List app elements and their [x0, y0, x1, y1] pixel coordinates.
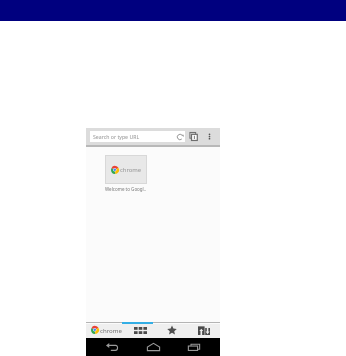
button[interactable]: Search or type URL [90, 131, 185, 142]
button[interactable]: Bookmarks [153, 323, 187, 337]
button[interactable]: Home [138, 338, 168, 356]
button[interactable]: chrome [86, 323, 122, 337]
button[interactable]: Most visited [122, 323, 153, 337]
staticText: chrome [100, 326, 122, 334]
button[interactable]: Recents [179, 338, 209, 356]
button[interactable]: Other devices [187, 323, 220, 337]
button[interactable]: More options [201, 128, 217, 145]
other: Reload [174, 131, 185, 142]
button[interactable]: Back [97, 338, 127, 356]
staticText: Search or type URL [93, 133, 174, 140]
button[interactable]: chrome [106, 156, 146, 183]
staticText: chrome [120, 166, 142, 174]
staticText: Welcome to Googl.. [105, 186, 147, 192]
button[interactable]: Tabs [185, 128, 201, 145]
